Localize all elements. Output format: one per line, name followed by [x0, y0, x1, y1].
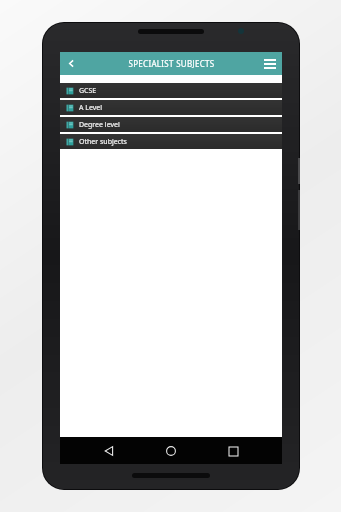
button[interactable]: GCSE	[60, 83, 282, 98]
staticText: Other subjects	[79, 137, 127, 147]
staticText: SPECIALIST SUBJECTS	[128, 58, 215, 69]
button[interactable]: Menu	[258, 52, 282, 75]
button[interactable]: Recent apps	[220, 438, 246, 464]
button[interactable]: Home	[158, 438, 184, 464]
button[interactable]: Degree level	[60, 117, 282, 132]
staticText: Degree level	[79, 120, 120, 130]
button[interactable]: Back	[96, 438, 122, 464]
staticText: A Level	[79, 103, 103, 113]
staticText: GCSE	[79, 86, 97, 96]
button[interactable]: A Level	[60, 100, 282, 115]
button[interactable]: Back	[60, 52, 82, 75]
button[interactable]: Other subjects	[60, 134, 282, 149]
